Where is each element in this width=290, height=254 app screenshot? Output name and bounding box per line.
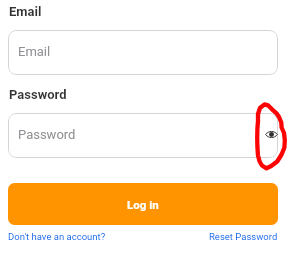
staticText: Log in [127,198,159,211]
button[interactable]: Email [8,30,278,75]
button[interactable]: Don't have an account? [8,231,106,242]
button[interactable]: Log in [8,183,278,225]
staticText: Don't have an account? [8,231,106,242]
staticText: Email [18,44,51,59]
button[interactable]: Show password [260,123,282,145]
staticText: Password [18,127,76,142]
staticText: Reset Password [209,231,278,242]
staticText: Password [9,87,67,102]
button[interactable]: Password [8,113,278,158]
staticText: Email [9,4,42,19]
button[interactable]: Reset Password [209,231,278,242]
